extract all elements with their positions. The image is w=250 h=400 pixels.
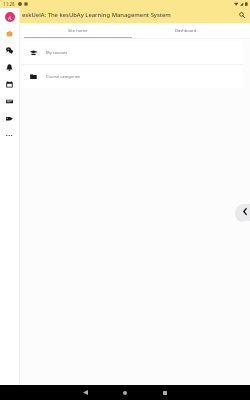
button[interactable]: Home (0, 25, 19, 42)
button[interactable]: Private files (0, 93, 19, 110)
button[interactable]: Site home (24, 23, 132, 38)
button[interactable]: More (0, 127, 19, 144)
button[interactable]: Recent apps (145, 385, 185, 400)
button[interactable]: Dashboard (132, 23, 240, 38)
button[interactable]: Home (105, 385, 145, 400)
staticText: Site home (68, 28, 88, 34)
button[interactable]: Profile (5, 12, 15, 22)
button[interactable]: Course categories (22, 65, 243, 88)
staticText: eskUelA: The kesUbAy Learning Management… (22, 11, 235, 19)
staticText: A (8, 14, 12, 21)
staticText: 11:28 (3, 1, 15, 7)
button[interactable]: Notifications (0, 59, 19, 76)
staticText: Dashboard (175, 28, 197, 34)
button[interactable]: Messages (0, 42, 19, 59)
button[interactable]: Back (65, 385, 105, 400)
button[interactable]: Open navigation drawer (236, 204, 250, 221)
button[interactable]: Tags (0, 110, 19, 127)
button[interactable]: Calendar (0, 76, 19, 93)
staticText: Course categories (46, 74, 80, 79)
button[interactable]: Search (235, 8, 249, 22)
staticText: My courses (46, 50, 68, 55)
button[interactable]: My courses (22, 41, 243, 64)
